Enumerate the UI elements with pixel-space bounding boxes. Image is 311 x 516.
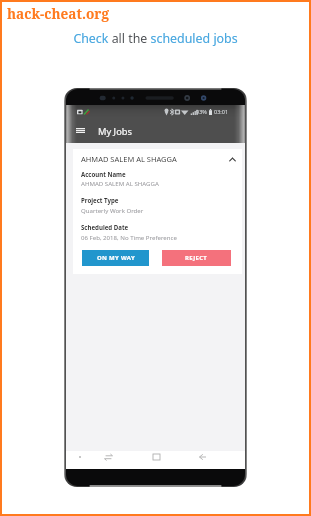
button[interactable]: Assistant bbox=[74, 451, 86, 463]
staticText: Scheduled Date bbox=[81, 223, 129, 231]
button[interactable]: Recent apps bbox=[102, 451, 114, 463]
staticText: Account Name bbox=[81, 170, 126, 178]
staticText: 06 Feb, 2018, No Time Preference bbox=[81, 233, 177, 241]
staticText: hack-cheat.org bbox=[7, 4, 109, 23]
staticText: AHMAD SALEM AL SHAGGA bbox=[81, 154, 177, 164]
button[interactable]: AHMAD SALEM AL SHAGGA bbox=[73, 149, 242, 166]
button[interactable]: Back bbox=[196, 451, 208, 463]
button[interactable]: Home bbox=[150, 451, 162, 463]
staticText: My Jobs bbox=[98, 125, 132, 138]
staticText: REJECT bbox=[185, 254, 208, 262]
staticText: 03:01 bbox=[214, 108, 229, 115]
other: Collapse bbox=[226, 153, 238, 165]
staticText: Check all the scheduled jobs bbox=[0, 30, 311, 47]
staticText: Quarterly Work Order bbox=[81, 206, 144, 214]
button[interactable]: ON MY WAY bbox=[82, 250, 149, 266]
staticText: Project Type bbox=[81, 196, 119, 204]
staticText: AHMAD SALEM AL SHAGGA bbox=[81, 179, 159, 187]
staticText: ON MY WAY bbox=[97, 254, 135, 262]
staticText: 93% bbox=[196, 108, 207, 115]
button[interactable]: Open navigation menu bbox=[71, 121, 90, 140]
button[interactable]: REJECT bbox=[162, 250, 231, 266]
